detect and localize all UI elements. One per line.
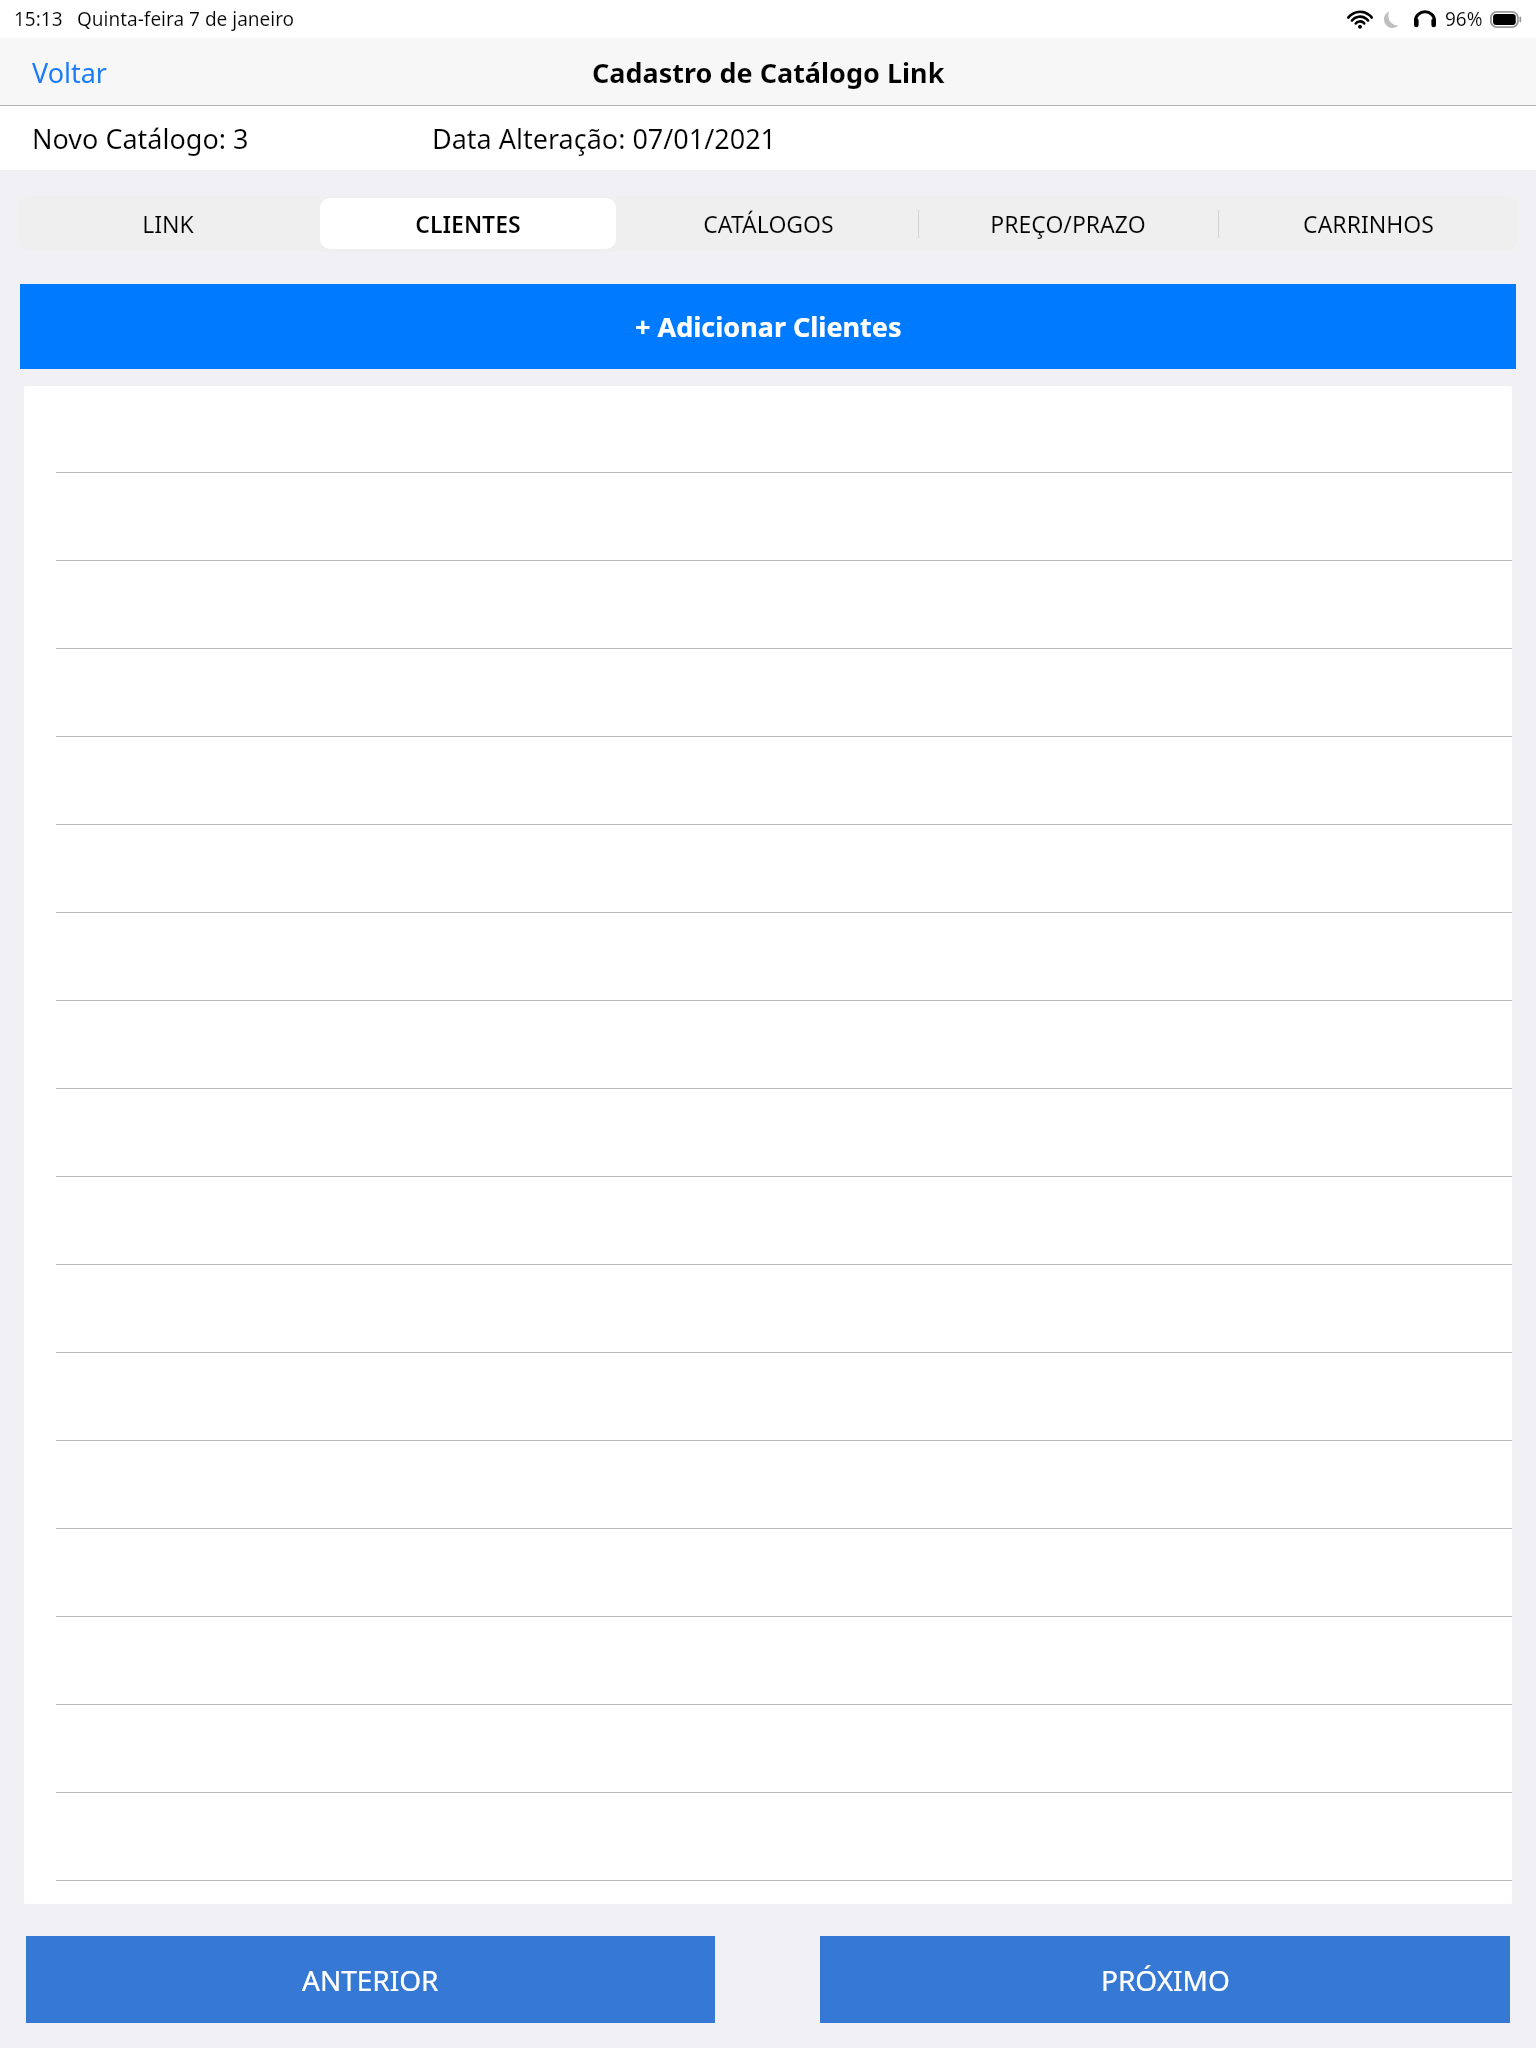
staticText: 96% (1445, 6, 1483, 32)
staticText: PREÇO/PRAZO (990, 208, 1146, 239)
staticText: CLIENTES (415, 208, 521, 239)
button[interactable]: + Adicionar Clientes (20, 284, 1516, 369)
staticText: Quinta-feira 7 de janeiro (77, 6, 295, 32)
button[interactable]: Voltar (0, 38, 134, 106)
button[interactable]: CATÁLOGOS (620, 198, 916, 249)
other: Battery 96 percent (1490, 11, 1522, 28)
staticText: + Adicionar Clientes (635, 308, 902, 345)
staticText: Novo Catálogo: 3 (32, 120, 249, 157)
other: Headphones connected (1414, 10, 1436, 28)
staticText: CATÁLOGOS (703, 208, 834, 239)
staticText: ANTERIOR (302, 1961, 439, 1999)
staticText: CARRINHOS (1303, 208, 1434, 239)
staticText: PRÓXIMO (1101, 1961, 1230, 1999)
button[interactable]: CLIENTES (320, 198, 616, 249)
staticText: 15:13 (14, 6, 63, 32)
other: Do Not Disturb (1383, 10, 1402, 29)
other: Wi-Fi (1349, 11, 1371, 28)
button[interactable]: PREÇO/PRAZO (920, 198, 1216, 249)
staticText: LINK (142, 208, 194, 239)
button[interactable]: LINK (20, 198, 316, 249)
staticText: Data Alteração: 07/01/2021 (432, 120, 777, 157)
staticText: Voltar (32, 54, 108, 91)
button[interactable]: CARRINHOS (1220, 198, 1516, 249)
staticText: Cadastro de Catálogo Link (592, 54, 945, 91)
button[interactable]: ANTERIOR (26, 1936, 715, 2023)
button[interactable]: PRÓXIMO (820, 1936, 1510, 2023)
